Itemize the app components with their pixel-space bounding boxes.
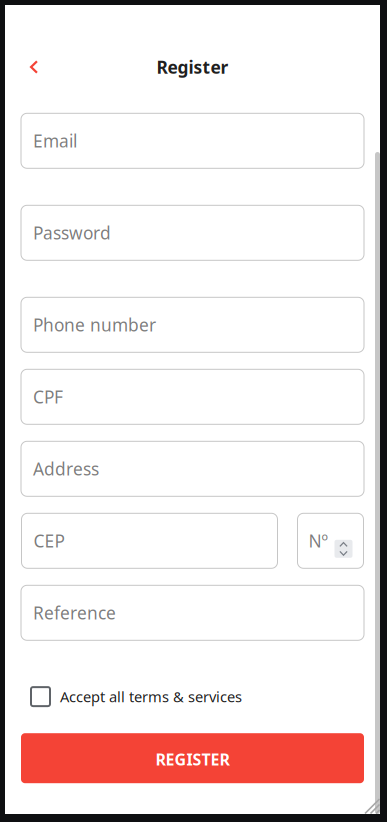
button[interactable]: Email	[21, 113, 364, 168]
staticText: Phone number	[33, 313, 156, 336]
staticText: Password	[33, 221, 111, 244]
staticText: Nº	[308, 529, 328, 552]
button[interactable]: CEP	[21, 513, 277, 568]
staticText: REGISTER	[155, 749, 229, 770]
button[interactable]: Phone number	[21, 297, 364, 352]
button[interactable]: CPF	[21, 369, 364, 424]
button[interactable]: Back	[20, 53, 48, 81]
staticText: Register	[156, 55, 228, 78]
staticText: CPF	[33, 385, 63, 408]
staticText: Address	[33, 457, 99, 480]
staticText: Reference	[33, 601, 116, 624]
button[interactable]: Address	[21, 441, 364, 496]
button[interactable]: Password	[21, 205, 364, 260]
button[interactable]: REGISTER	[21, 733, 364, 783]
staticText: Accept all terms & services	[60, 687, 242, 706]
button[interactable]: Nº	[297, 513, 363, 568]
button[interactable]: Reference	[21, 585, 364, 640]
button[interactable]: Accept all terms & services	[21, 687, 364, 706]
staticText: Email	[33, 129, 77, 152]
staticText: CEP	[33, 529, 64, 552]
